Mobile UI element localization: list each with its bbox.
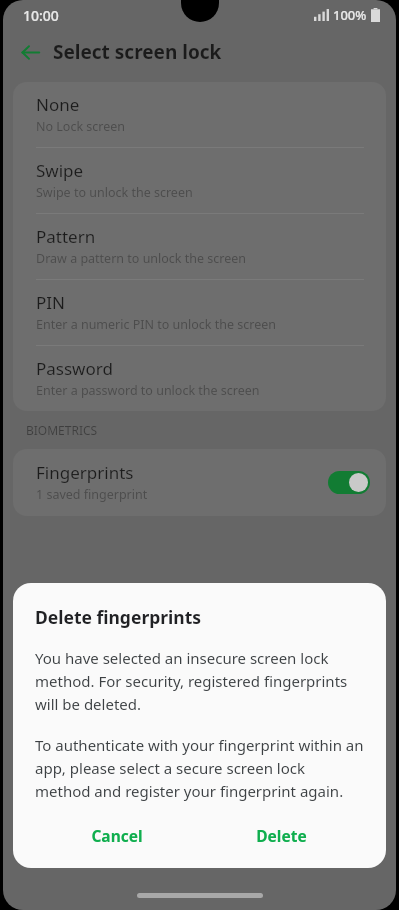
- button[interactable]: Fingerprints: [13, 449, 386, 516]
- button[interactable]: Password: [13, 346, 386, 411]
- staticText: Pattern: [36, 225, 96, 248]
- staticText: You have selected an insecure screen loc…: [35, 648, 364, 714]
- staticText: None: [36, 93, 80, 116]
- button[interactable]: Delete: [199, 815, 364, 856]
- staticText: Swipe to unlock the screen: [36, 184, 193, 201]
- button[interactable]: PIN: [13, 280, 386, 345]
- button[interactable]: Back: [13, 35, 47, 69]
- button[interactable]: Cancel: [35, 815, 199, 856]
- staticText: Enter a numeric PIN to unlock the screen: [36, 316, 277, 333]
- staticText: Cancel: [91, 825, 143, 846]
- staticText: Fingerprints: [36, 461, 134, 484]
- staticText: Draw a pattern to unlock the screen: [36, 250, 247, 267]
- staticText: Swipe: [36, 159, 84, 182]
- staticText: BIOMETRICS: [26, 422, 98, 438]
- button[interactable]: None: [13, 82, 386, 147]
- button[interactable]: Pattern: [13, 214, 386, 279]
- staticText: Delete: [256, 825, 307, 846]
- staticText: To authenticate with your fingerprint wi…: [35, 735, 364, 801]
- staticText: PIN: [36, 291, 65, 314]
- staticText: 100%: [333, 6, 367, 24]
- staticText: Enter a password to unlock the screen: [36, 382, 260, 399]
- staticText: Select screen lock: [53, 39, 222, 65]
- staticText: Delete fingerprints: [35, 605, 202, 629]
- staticText: 1 saved fingerprint: [36, 486, 148, 503]
- staticText: Password: [36, 357, 113, 380]
- staticText: No Lock screen: [36, 118, 126, 135]
- button[interactable]: Fingerprints toggle, on: [328, 471, 370, 494]
- staticText: 10:00: [23, 6, 59, 25]
- button[interactable]: Swipe: [13, 148, 386, 213]
